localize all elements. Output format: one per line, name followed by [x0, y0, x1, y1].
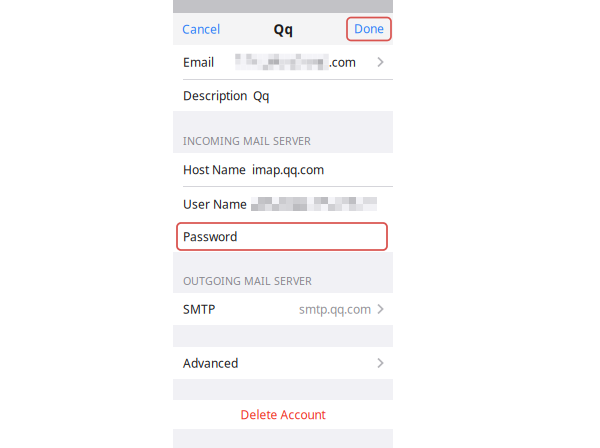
- staticText: Qq: [273, 20, 292, 38]
- button[interactable]: Cancel: [179, 16, 223, 42]
- staticText: .com: [329, 54, 356, 70]
- staticText: SMTP: [183, 301, 215, 317]
- staticText: Description: [183, 87, 247, 103]
- button[interactable]: SMTP: [173, 293, 393, 325]
- staticText: Host Name: [183, 161, 246, 177]
- button[interactable]: Done: [347, 17, 391, 40]
- button[interactable]: Email: [173, 45, 393, 79]
- staticText: User Name: [183, 196, 247, 212]
- staticText: Done: [354, 20, 384, 36]
- staticText: imap.qq.com: [246, 161, 324, 177]
- button[interactable]: Delete Account: [173, 400, 393, 429]
- staticText: smtp.qq.com: [299, 301, 371, 317]
- staticText: Email: [183, 54, 214, 70]
- staticText: Advanced: [183, 355, 238, 371]
- button[interactable]: Advanced: [173, 347, 393, 379]
- staticText: Qq: [247, 87, 269, 103]
- staticText: OUTGOING MAIL SERVER: [183, 274, 312, 288]
- staticText: INCOMING MAIL SERVER: [183, 134, 311, 148]
- staticText: Cancel: [182, 21, 220, 37]
- staticText: Password: [183, 228, 237, 244]
- staticText: Delete Account: [240, 406, 325, 422]
